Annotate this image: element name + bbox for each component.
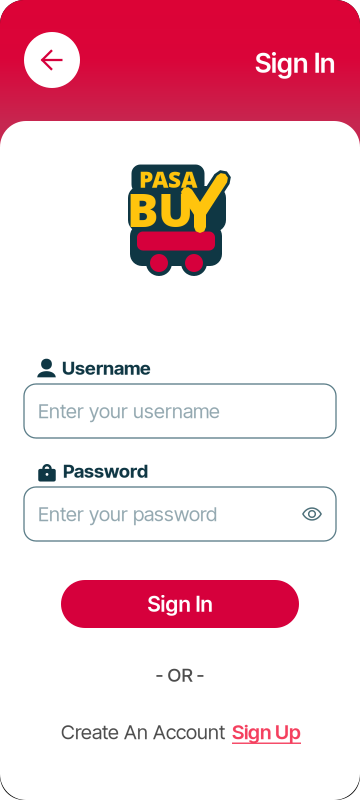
staticText: Sign Up (232, 720, 301, 744)
staticText: PASA (139, 164, 197, 194)
staticText: Sign In (147, 591, 212, 617)
button[interactable]: Sign In (61, 580, 299, 628)
button[interactable]: Back (24, 32, 80, 88)
staticText: Password (63, 460, 148, 482)
staticText: BU (127, 178, 193, 240)
button[interactable]: Sign Up (232, 720, 301, 744)
staticText: - OR - (155, 664, 204, 686)
staticText: Sign In (255, 47, 335, 79)
button[interactable]: Show password (302, 506, 322, 522)
staticText: Enter your password (38, 502, 217, 526)
staticText: Enter your username (38, 399, 220, 423)
staticText: Create An Account (61, 720, 225, 744)
staticText: Username (62, 357, 151, 379)
